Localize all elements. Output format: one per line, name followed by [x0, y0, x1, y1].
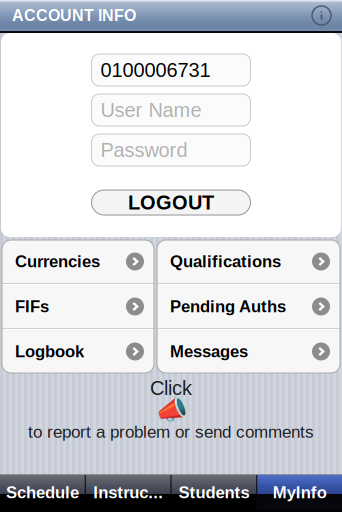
- staticText: Click: [150, 377, 192, 399]
- button[interactable]: Schedule: [0, 475, 85, 510]
- staticText: Messages: [170, 342, 248, 361]
- staticText: Instruc...: [93, 483, 163, 502]
- button[interactable]: Report a problem: [154, 399, 187, 421]
- staticText: Students: [178, 483, 249, 502]
- button[interactable]: Pending Auths: [157, 285, 340, 328]
- staticText: Logbook: [15, 342, 84, 361]
- button[interactable]: Messages: [157, 330, 340, 373]
- button[interactable]: Students: [171, 475, 256, 510]
- staticText: Pending Auths: [170, 297, 286, 316]
- staticText: Schedule: [6, 483, 79, 502]
- button[interactable]: Info: [312, 6, 331, 25]
- button[interactable]: FIFs: [2, 285, 154, 328]
- button[interactable]: Qualifications: [157, 240, 340, 283]
- button[interactable]: LOGOUT: [91, 190, 250, 215]
- button[interactable]: Logbook: [2, 330, 154, 373]
- staticText: 📣: [154, 395, 187, 426]
- staticText: LOGOUT: [128, 191, 214, 214]
- staticText: User Name: [100, 99, 201, 121]
- staticText: Currencies: [15, 252, 100, 271]
- button[interactable]: MyInfo: [257, 475, 342, 510]
- staticText: 0100006731: [100, 59, 210, 81]
- button[interactable]: Instruc...: [86, 475, 171, 510]
- staticText: FIFs: [15, 297, 49, 316]
- staticText: MyInfo: [273, 483, 327, 502]
- staticText: Password: [100, 139, 187, 161]
- staticText: to report a problem or send comments: [28, 422, 314, 441]
- staticText: ACCOUNT INFO: [12, 7, 136, 24]
- button[interactable]: Currencies: [2, 240, 154, 283]
- staticText: Qualifications: [170, 252, 281, 271]
